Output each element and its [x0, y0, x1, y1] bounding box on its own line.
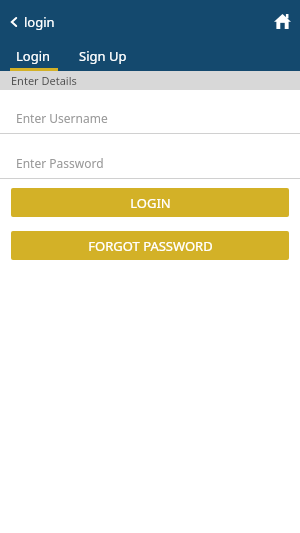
other: Back	[9, 17, 19, 27]
staticText: Sign Up	[79, 47, 127, 65]
button[interactable]: Home	[272, 11, 292, 31]
button[interactable]: Back	[9, 13, 55, 31]
button[interactable]: Login	[0, 45, 68, 71]
staticText: login	[24, 13, 55, 31]
button[interactable]: LOGIN	[11, 188, 289, 217]
staticText: Login	[16, 47, 51, 65]
button[interactable]: Enter Password	[0, 148, 300, 178]
staticText: LOGIN	[130, 194, 171, 212]
button[interactable]: Enter Username	[0, 103, 300, 133]
staticText: Enter Username	[16, 110, 108, 126]
button[interactable]: FORGOT PASSWORD	[11, 231, 289, 260]
staticText: Enter Details	[11, 73, 77, 88]
staticText: FORGOT PASSWORD	[88, 237, 213, 255]
staticText: Enter Password	[16, 155, 104, 171]
button[interactable]: Sign Up	[68, 45, 148, 71]
